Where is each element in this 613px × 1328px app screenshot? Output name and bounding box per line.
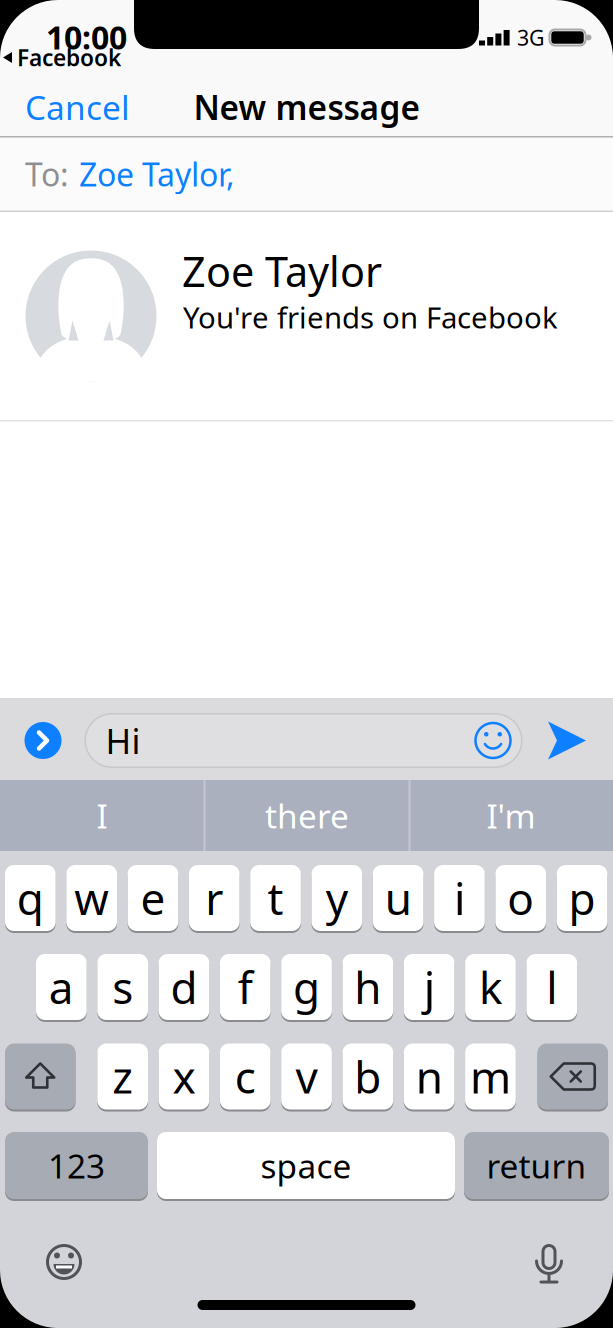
button[interactable]: b — [342, 1042, 393, 1110]
staticText: space — [260, 1143, 351, 1188]
button[interactable]: there — [207, 780, 407, 851]
staticText: r — [205, 869, 223, 927]
staticText: l — [546, 958, 557, 1016]
button[interactable]: h — [342, 953, 393, 1021]
button[interactable]: Cancel — [0, 71, 200, 143]
button[interactable]: q — [5, 864, 56, 932]
button[interactable]: I — [2, 780, 202, 851]
staticText: c — [235, 1047, 256, 1106]
button[interactable]: c — [220, 1042, 271, 1110]
button[interactable]: f — [220, 953, 271, 1021]
button[interactable]: u — [373, 864, 423, 932]
button[interactable]: s — [97, 953, 148, 1021]
staticText: h — [354, 958, 381, 1016]
staticText: s — [112, 958, 133, 1016]
staticText: x — [172, 1047, 195, 1106]
staticText: w — [74, 869, 109, 927]
button[interactable] — [537, 1042, 608, 1110]
button[interactable]: 123 — [5, 1131, 148, 1200]
button[interactable]: x — [159, 1042, 209, 1110]
button[interactable]: o — [495, 864, 546, 932]
staticText: f — [238, 958, 253, 1016]
staticText: New message — [193, 85, 420, 129]
staticText: p — [568, 869, 595, 927]
staticText: k — [479, 958, 502, 1016]
staticText: return — [486, 1143, 586, 1188]
button[interactable]: r — [189, 864, 240, 932]
staticText: u — [385, 869, 412, 927]
button[interactable]: return — [464, 1131, 609, 1200]
button[interactable] — [42, 1240, 86, 1284]
staticText: 123 — [48, 1143, 105, 1188]
staticText: 3G — [517, 23, 545, 52]
staticText: a — [49, 958, 74, 1016]
button[interactable]: Facebook — [3, 42, 121, 72]
staticText: y — [326, 869, 348, 927]
staticText: b — [354, 1047, 381, 1106]
button[interactable] — [5, 1042, 75, 1110]
staticText: there — [265, 793, 349, 838]
button[interactable]: k — [465, 953, 516, 1021]
button[interactable]: To: — [0, 137, 613, 210]
staticText: e — [140, 869, 165, 927]
staticText: t — [268, 869, 284, 927]
button[interactable]: Hi — [84, 713, 522, 768]
button[interactable]: space — [157, 1131, 455, 1200]
button[interactable]: w — [66, 864, 117, 932]
staticText: Zoe Taylor — [182, 244, 382, 298]
staticText: i — [454, 869, 465, 927]
staticText: You're friends on Facebook — [183, 297, 558, 336]
staticText: I — [96, 793, 107, 838]
staticText: To: — [25, 153, 69, 195]
staticText: I'm — [486, 793, 535, 838]
button[interactable]: m — [465, 1042, 516, 1110]
staticText: g — [293, 958, 320, 1016]
staticText: j — [424, 958, 435, 1016]
button[interactable]: i — [434, 864, 485, 932]
staticText: d — [170, 958, 197, 1016]
button[interactable]: I'm — [411, 780, 611, 851]
button[interactable] — [24, 722, 61, 759]
staticText: Facebook — [17, 42, 121, 72]
button[interactable]: l — [526, 953, 577, 1021]
staticText: Hi — [105, 717, 140, 763]
button[interactable]: n — [404, 1042, 454, 1110]
button[interactable] — [548, 721, 586, 759]
button[interactable]: Zoe Taylor — [0, 212, 613, 420]
button[interactable]: t — [250, 864, 301, 932]
button[interactable]: z — [97, 1042, 148, 1110]
button[interactable] — [473, 721, 512, 760]
button[interactable]: j — [404, 953, 454, 1021]
staticText: v — [295, 1047, 317, 1106]
staticText: Cancel — [25, 85, 130, 129]
button[interactable]: p — [557, 864, 607, 932]
staticText: q — [17, 869, 44, 927]
button[interactable]: d — [159, 953, 209, 1021]
staticText: n — [416, 1047, 443, 1106]
button[interactable] — [527, 1240, 571, 1284]
staticText: 10:00 — [46, 16, 127, 58]
button[interactable]: y — [311, 864, 362, 932]
button[interactable]: e — [128, 864, 178, 932]
staticText: o — [507, 869, 534, 927]
staticText: Zoe Taylor, — [79, 153, 235, 195]
button[interactable]: v — [281, 1042, 332, 1110]
button[interactable]: g — [281, 953, 332, 1021]
staticText: m — [470, 1047, 511, 1106]
staticText: z — [112, 1047, 133, 1106]
button[interactable]: a — [36, 953, 87, 1021]
